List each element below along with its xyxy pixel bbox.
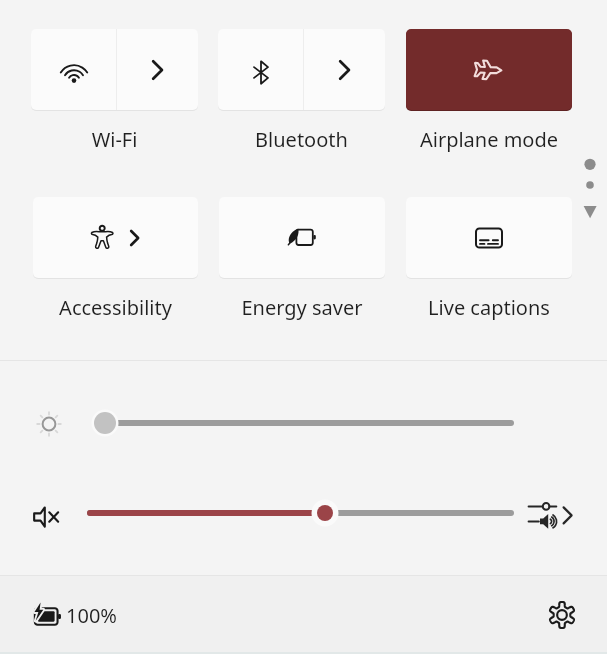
button[interactable]: Bluetooth — [218, 29, 303, 110]
staticText: Bluetooth — [218, 126, 385, 153]
staticText: Airplane mode — [406, 126, 572, 153]
staticText: Accessibility — [33, 294, 198, 321]
button[interactable]: Bluetooth settings — [304, 29, 385, 110]
staticText: Wi-Fi — [31, 126, 198, 153]
staticText: Energy saver — [219, 294, 385, 321]
staticText: Live captions — [406, 294, 572, 321]
button[interactable]: Volume — [84, 495, 520, 531]
button[interactable]: Airplane mode — [406, 29, 572, 110]
button[interactable]: Live captions — [406, 197, 572, 278]
button[interactable]: Energy saver — [219, 197, 385, 278]
staticText: 100% — [66, 602, 117, 629]
button[interactable]: More quick settings — [578, 150, 602, 224]
button[interactable]: Wi-Fi settings — [117, 29, 198, 110]
button[interactable]: Settings — [544, 597, 580, 633]
button[interactable]: Volume mixer — [524, 497, 584, 529]
button[interactable]: 100% — [24, 599, 121, 631]
button[interactable]: Wi-Fi — [31, 29, 116, 110]
button[interactable]: Brightness — [88, 405, 524, 441]
button[interactable] — [33, 197, 198, 278]
